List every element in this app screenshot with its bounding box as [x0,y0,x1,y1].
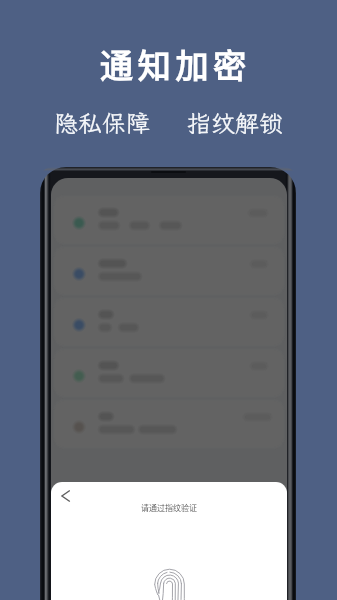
button[interactable] [55,299,283,345]
staticText: 请通过指纹验证 [51,502,287,514]
button[interactable] [55,248,283,294]
button[interactable] [55,401,283,447]
button[interactable]: 返回 [53,483,79,509]
staticText: 指纹解锁 [187,107,283,139]
button[interactable]: 指纹验证 [154,569,185,600]
button[interactable] [55,350,283,396]
staticText: 隐私保障 [54,107,150,139]
staticText: 通知加密 [7,40,337,88]
button[interactable] [55,197,283,243]
